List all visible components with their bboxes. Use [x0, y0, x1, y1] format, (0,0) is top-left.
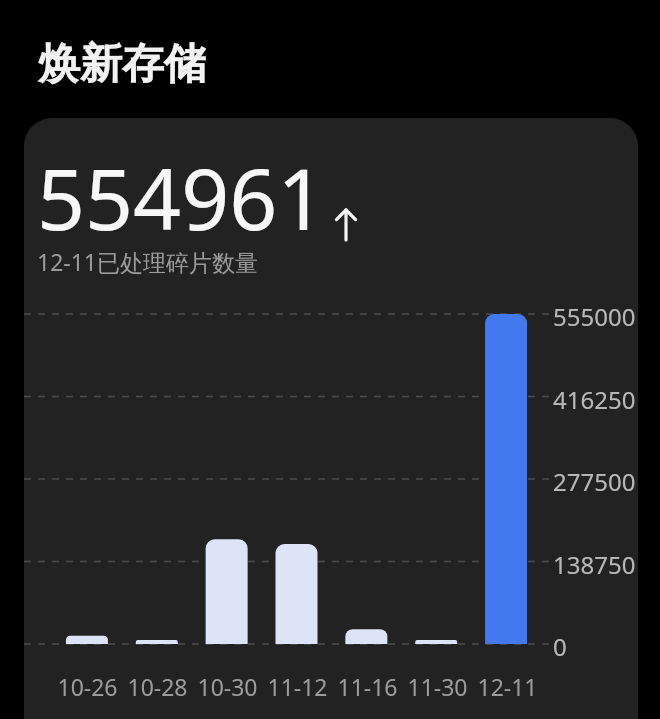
staticText: 12-11已处理碎片数量: [37, 246, 259, 277]
staticText: 10-26: [57, 671, 118, 702]
staticText: 11-30: [407, 671, 468, 702]
staticText: 10-28: [127, 671, 188, 702]
button[interactable]: 554961: [24, 118, 638, 719]
staticText: 277500: [553, 465, 636, 498]
staticText: 555000: [553, 300, 636, 333]
staticText: 554961: [37, 140, 326, 254]
staticText: 12-11: [477, 671, 538, 702]
staticText: 0: [553, 630, 567, 663]
other: Increase: [334, 208, 358, 240]
staticText: 焕新存储: [38, 38, 206, 91]
staticText: 416250: [553, 383, 636, 416]
staticText: 11-12: [267, 671, 328, 702]
staticText: 10-30: [197, 671, 258, 702]
staticText: 11-16: [337, 671, 398, 702]
staticText: 138750: [553, 548, 636, 581]
